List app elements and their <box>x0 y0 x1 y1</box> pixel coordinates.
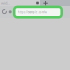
button[interactable]: Reload <box>2 9 8 15</box>
button[interactable]: Close Tab <box>35 0 40 6</box>
button[interactable]: widget <box>1 0 11 6</box>
button[interactable]: New Tab <box>43 0 49 6</box>
button[interactable]: Site Information <box>8 9 12 15</box>
staticText: https://example.com/w <box>18 10 47 14</box>
button[interactable]: https://example.com/w <box>14 7 62 17</box>
staticText: widget <box>1 0 11 6</box>
